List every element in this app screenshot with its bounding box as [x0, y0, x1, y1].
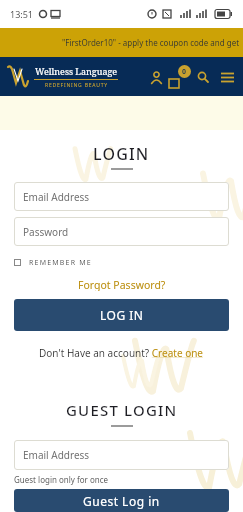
button[interactable]: Forgot Password?	[78, 278, 166, 291]
staticText: LOG IN	[100, 307, 144, 323]
staticText: Guest login only for once	[14, 474, 109, 485]
staticText: LOGIN	[93, 143, 150, 163]
staticText: Email Address	[23, 190, 90, 204]
staticText: Password	[23, 225, 69, 239]
staticText: Wellness Language	[35, 65, 118, 77]
button[interactable]: Email Address	[14, 440, 229, 470]
button[interactable]	[147, 68, 165, 86]
button[interactable]: "FirstOrder10" - apply the coupon code a…	[0, 28, 243, 57]
button[interactable]: 0	[167, 65, 191, 89]
staticText: "FirstOrder10" - apply the coupon code a…	[62, 37, 240, 48]
button[interactable]: Don't Have an account? Create one	[39, 346, 204, 358]
button[interactable]: REMEMBER ME	[14, 258, 243, 267]
staticText: Don't Have an account? Create one	[39, 346, 204, 358]
button[interactable]: Guest Log in	[14, 489, 229, 512]
staticText: GUEST LOGIN	[66, 400, 178, 418]
staticText: REDEFINING BEAUTY	[45, 82, 108, 89]
button[interactable]: Wellness Language	[6, 63, 119, 91]
button[interactable]: Password	[14, 217, 229, 246]
staticText: 13:51	[10, 8, 34, 20]
staticText: Email Address	[23, 448, 90, 462]
button[interactable]: LOG IN	[14, 299, 229, 331]
staticText: Guest Log in	[83, 493, 160, 509]
staticText: Forgot Password?	[78, 278, 166, 291]
staticText: 0	[182, 67, 187, 77]
staticText: REMEMBER ME	[29, 258, 92, 267]
button[interactable]	[194, 68, 212, 86]
button[interactable]: Email Address	[14, 182, 229, 211]
button[interactable]	[217, 67, 237, 87]
